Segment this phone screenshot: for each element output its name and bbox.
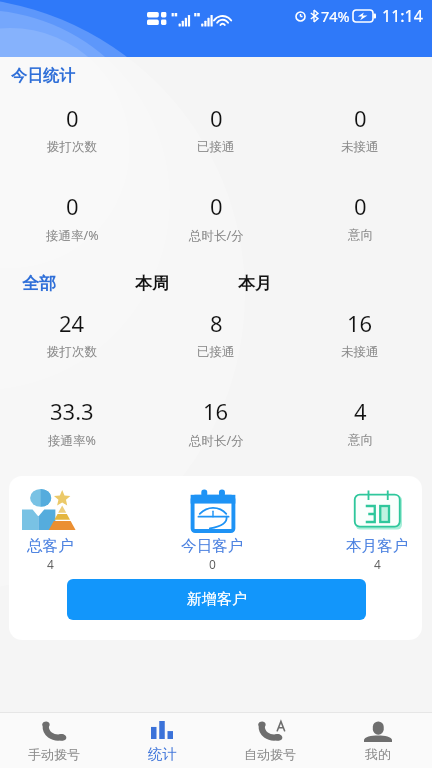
staticText: 0 — [209, 556, 216, 572]
staticText: 11:14 — [382, 5, 423, 27]
staticText: 手动拨号 — [28, 746, 80, 762]
staticText: 16 — [203, 396, 229, 426]
staticText: 接通率% — [48, 432, 96, 449]
staticText: 接通率/% — [46, 227, 99, 244]
staticText: 今日统计 — [11, 66, 75, 86]
staticText: 74% — [321, 6, 350, 26]
button[interactable]: 全部 — [22, 273, 56, 294]
staticText: 未接通 — [341, 139, 379, 155]
staticText: 已接通 — [197, 344, 235, 360]
staticText: 本月 — [238, 273, 272, 294]
staticText: 16 — [347, 308, 373, 338]
staticText: 总时长/分 — [189, 227, 244, 244]
staticText: 0 — [354, 103, 367, 133]
button[interactable]: 统计 — [108, 719, 216, 763]
staticText: 0 — [66, 103, 79, 133]
staticText: 总时长/分 — [189, 432, 244, 449]
staticText: 0 — [210, 191, 223, 221]
staticText: 总客户 — [27, 536, 74, 556]
button[interactable]: 本月客户 — [346, 486, 409, 572]
staticText: 0 — [66, 191, 79, 221]
staticText: 33.3 — [50, 396, 94, 426]
staticText: 统计 — [148, 745, 177, 763]
staticText: 意向 — [348, 227, 373, 243]
staticText: 本月客户 — [346, 536, 409, 556]
button[interactable]: 手动拨号 — [0, 720, 108, 762]
staticText: 未接通 — [341, 344, 379, 360]
button[interactable]: 新增客户 — [67, 579, 366, 620]
staticText: 4 — [354, 396, 367, 426]
staticText: 已接通 — [197, 139, 235, 155]
staticText: 我的 — [365, 746, 391, 762]
staticText: 本周 — [135, 273, 169, 294]
staticText: 0 — [354, 191, 367, 221]
button[interactable]: 今日客户 — [181, 486, 244, 572]
staticText: 4 — [47, 556, 54, 572]
staticText: 4 — [374, 556, 381, 572]
staticText: 新增客户 — [187, 590, 247, 609]
staticText: 自动拨号 — [244, 746, 296, 762]
staticText: 0 — [210, 103, 223, 133]
button[interactable]: 总客户 — [22, 486, 79, 572]
button[interactable]: 我的 — [324, 720, 432, 762]
staticText: 全部 — [22, 273, 56, 294]
button[interactable]: 本周 — [135, 273, 169, 294]
staticText: 8 — [210, 308, 223, 338]
staticText: 今日客户 — [181, 536, 244, 556]
staticText: 意向 — [348, 432, 373, 448]
staticText: 拨打次数 — [47, 344, 97, 360]
staticText: 24 — [59, 308, 85, 338]
staticText: 拨打次数 — [47, 139, 97, 155]
button[interactable]: 自动拨号 — [216, 720, 324, 762]
button[interactable]: 本月 — [238, 273, 272, 294]
